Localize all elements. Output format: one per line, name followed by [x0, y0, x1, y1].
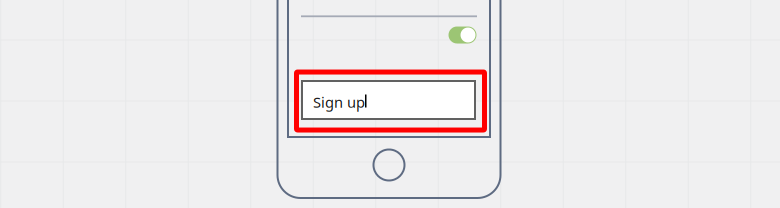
button[interactable]: Toggle, on: [448, 26, 476, 43]
button[interactable]: Home: [373, 149, 404, 180]
button[interactable]: Sign up: [301, 80, 476, 120]
staticText: Sign up: [313, 92, 365, 112]
button[interactable]: Selected element: [294, 69, 487, 132]
